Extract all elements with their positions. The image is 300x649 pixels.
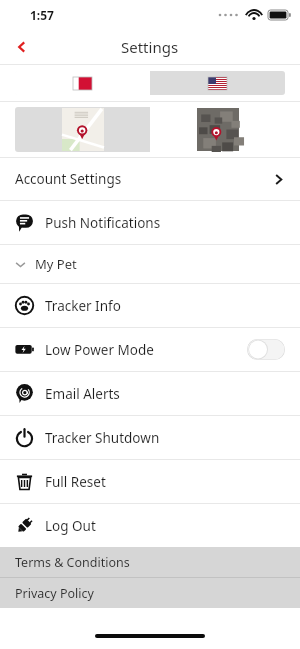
staticText: Full Reset bbox=[45, 473, 106, 491]
button[interactable]: Low Power Mode bbox=[0, 328, 300, 371]
button[interactable]: Low Power Mode toggle bbox=[247, 339, 285, 360]
staticText: My Pet bbox=[35, 255, 77, 273]
button[interactable]: Email Alerts bbox=[0, 372, 300, 415]
button[interactable]: Tracker Shutdown bbox=[0, 416, 300, 459]
button[interactable]: Account Settings bbox=[0, 158, 300, 200]
button[interactable]: Back bbox=[0, 30, 44, 64]
button[interactable]: US units bbox=[150, 71, 285, 95]
button[interactable]: Push Notifications bbox=[0, 201, 300, 244]
staticText: Tracker Info bbox=[45, 297, 121, 315]
button[interactable]: Terms & Conditions bbox=[0, 547, 300, 577]
staticText: Account Settings bbox=[15, 170, 122, 188]
button[interactable]: Privacy Policy bbox=[0, 578, 300, 608]
staticText: Settings bbox=[121, 37, 179, 57]
button[interactable]: Tracker Info bbox=[0, 284, 300, 327]
button[interactable]: Full Reset bbox=[0, 460, 300, 503]
button[interactable]: Bahrain units bbox=[15, 71, 150, 95]
staticText: Push Notifications bbox=[45, 214, 161, 232]
button[interactable]: My Pet bbox=[0, 245, 300, 283]
button[interactable]: Standard map bbox=[15, 107, 150, 152]
staticText: Terms & Conditions bbox=[15, 554, 130, 571]
staticText: Privacy Policy bbox=[15, 585, 94, 602]
button[interactable]: Satellite map bbox=[150, 107, 285, 152]
staticText: 1:57 bbox=[30, 7, 54, 23]
button[interactable]: Log Out bbox=[0, 504, 300, 547]
staticText: Log Out bbox=[45, 517, 96, 535]
staticText: Tracker Shutdown bbox=[45, 429, 160, 447]
staticText: Low Power Mode bbox=[45, 341, 154, 359]
staticText: Email Alerts bbox=[45, 385, 120, 403]
